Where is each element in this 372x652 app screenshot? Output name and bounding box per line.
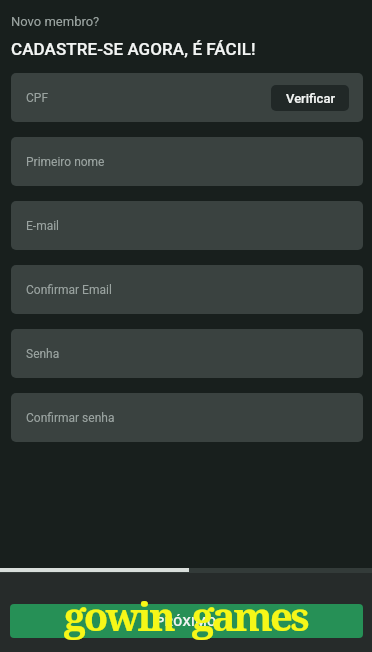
button[interactable]: Primeiro nome — [11, 137, 363, 186]
staticText: E-mail — [26, 219, 60, 233]
button[interactable]: PRÓXIMO — [10, 604, 363, 638]
staticText: Senha — [26, 347, 60, 361]
staticText: games — [192, 588, 307, 642]
staticText: PRÓXIMO — [156, 614, 217, 629]
staticText: Primeiro nome — [26, 155, 105, 169]
staticText: gowin — [64, 588, 173, 642]
button[interactable]: Confirmar senha — [11, 393, 363, 442]
staticText: Novo membro? — [11, 14, 100, 29]
button[interactable]: CPF — [11, 73, 363, 122]
button[interactable]: Verificar — [271, 85, 349, 111]
button[interactable]: Confirmar Email — [11, 265, 363, 314]
button[interactable]: E-mail — [11, 201, 363, 250]
button[interactable]: Senha — [11, 329, 363, 378]
staticText: Confirmar senha — [26, 411, 115, 425]
staticText: Verificar — [286, 91, 335, 106]
staticText: Confirmar Email — [26, 283, 112, 297]
staticText: CADASTRE-SE AGORA, É FÁCIL! — [11, 39, 256, 59]
staticText: CPF — [26, 91, 49, 105]
